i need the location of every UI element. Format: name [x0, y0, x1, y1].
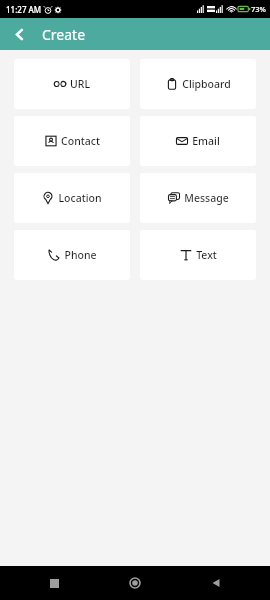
staticText: Phone: [64, 248, 97, 262]
button[interactable]: Text: [140, 230, 256, 280]
button[interactable]: Recent apps: [40, 569, 68, 597]
staticText: URL: [70, 77, 90, 91]
button[interactable]: Phone: [14, 230, 130, 280]
button[interactable]: Clipboard: [140, 59, 256, 109]
button[interactable]: Back: [202, 569, 230, 597]
button[interactable]: Back: [6, 21, 32, 47]
staticText: Message: [184, 191, 229, 205]
button[interactable]: URL: [14, 59, 130, 109]
button[interactable]: Home: [121, 569, 149, 597]
button[interactable]: Message: [140, 173, 256, 223]
staticText: Location: [58, 191, 102, 205]
staticText: Clipboard: [182, 77, 231, 91]
staticText: Email: [192, 134, 220, 148]
staticText: Create: [42, 25, 86, 44]
staticText: Contact: [61, 134, 100, 148]
button[interactable]: Contact: [14, 116, 130, 166]
staticText: 73%: [251, 4, 266, 14]
button[interactable]: Email: [140, 116, 256, 166]
button[interactable]: Location: [14, 173, 130, 223]
staticText: 11:27 AM: [6, 4, 42, 15]
staticText: Text: [196, 248, 217, 262]
